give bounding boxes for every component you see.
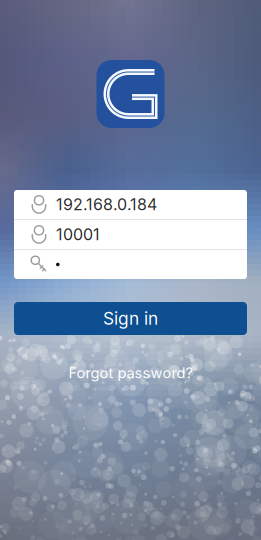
staticText: 10001: [56, 225, 100, 244]
staticText: Forgot password?: [68, 364, 192, 382]
button[interactable]: Forgot password?: [50, 365, 210, 381]
staticText: 192.168.0.184: [56, 195, 157, 214]
staticText: Sign in: [103, 308, 158, 329]
button[interactable]: Sign in: [14, 302, 247, 335]
